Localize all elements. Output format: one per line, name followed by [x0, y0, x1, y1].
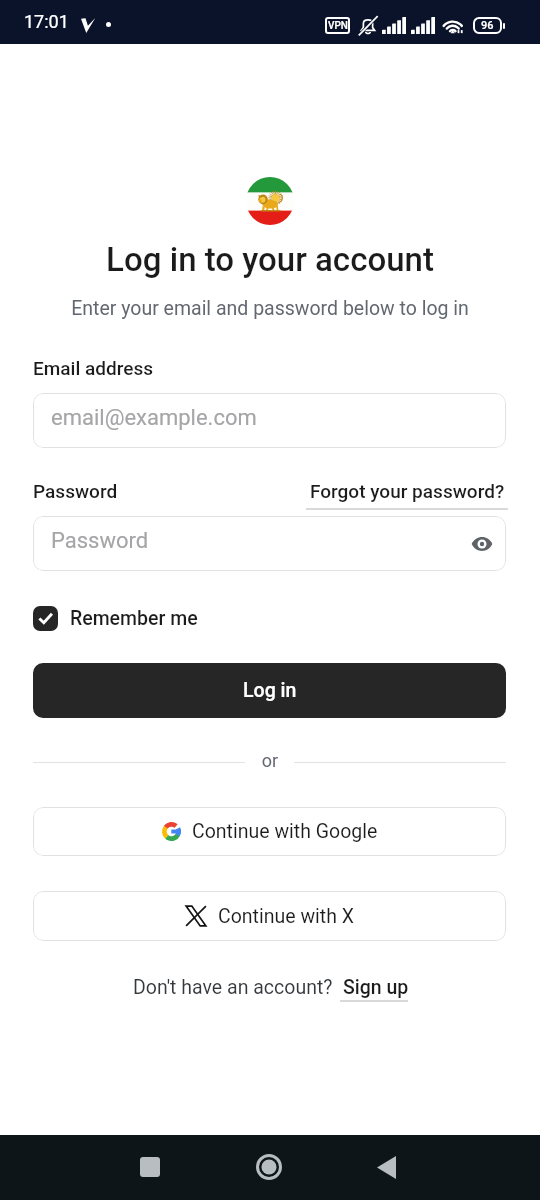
staticText: Sign up — [343, 976, 409, 999]
button[interactable]: Recents — [126, 1143, 174, 1191]
staticText: 96 — [481, 19, 494, 32]
staticText: or — [0, 750, 540, 771]
staticText: Enter your email and password below to l… — [0, 297, 540, 320]
staticText: email@example.com — [51, 405, 257, 431]
staticText: Password — [33, 480, 118, 502]
staticText: 17:01 — [24, 11, 69, 32]
staticText: VPN — [328, 20, 348, 32]
staticText: Log in — [243, 679, 297, 702]
button[interactable]: Forgot your password? — [308, 478, 503, 506]
staticText: Log in to your account — [0, 240, 540, 279]
button[interactable]: Continue with X — [33, 891, 506, 941]
staticText: Don't have an account? — [133, 976, 333, 999]
button[interactable]: Back — [362, 1143, 410, 1191]
staticText: Remember me — [70, 607, 198, 630]
staticText: Password — [51, 528, 149, 554]
staticText: Email address — [33, 357, 154, 379]
button[interactable]: Home — [245, 1143, 293, 1191]
button[interactable]: Show password — [469, 531, 495, 557]
button[interactable]: Log in — [33, 663, 506, 718]
button[interactable]: Remember me — [33, 602, 198, 634]
staticText: Continue with X — [218, 905, 354, 928]
button[interactable]: email@example.com — [33, 393, 506, 448]
staticText: Continue with Google — [192, 820, 378, 843]
button[interactable]: Sign up — [341, 974, 407, 1003]
button[interactable]: Password — [33, 516, 506, 571]
button[interactable]: Continue with Google — [33, 807, 506, 856]
staticText: Forgot your password? — [310, 480, 505, 502]
